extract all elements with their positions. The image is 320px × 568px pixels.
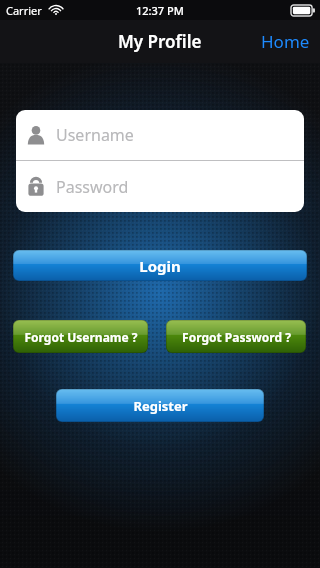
staticText: Forgot Password ? <box>182 329 291 345</box>
button[interactable]: Home <box>251 22 320 61</box>
other: Username <box>26 125 46 145</box>
staticText: Forgot Username ? <box>24 329 138 345</box>
button[interactable]: Username <box>16 110 304 160</box>
staticText: Register <box>133 397 188 415</box>
staticText: 12:37 PM <box>136 3 184 18</box>
button[interactable]: Forgot Username ? <box>13 320 148 353</box>
staticText: Username <box>56 124 134 146</box>
other: Password <box>26 177 46 197</box>
staticText: Carrier <box>6 3 42 18</box>
staticText: Password <box>56 176 129 198</box>
button[interactable]: Register <box>56 389 264 422</box>
staticText: Home <box>261 30 310 53</box>
button[interactable]: Forgot Password ? <box>166 320 306 353</box>
staticText: My Profile <box>118 30 202 53</box>
button[interactable]: Password <box>16 161 304 212</box>
staticText: Login <box>139 256 181 276</box>
button[interactable]: Login <box>13 250 307 281</box>
